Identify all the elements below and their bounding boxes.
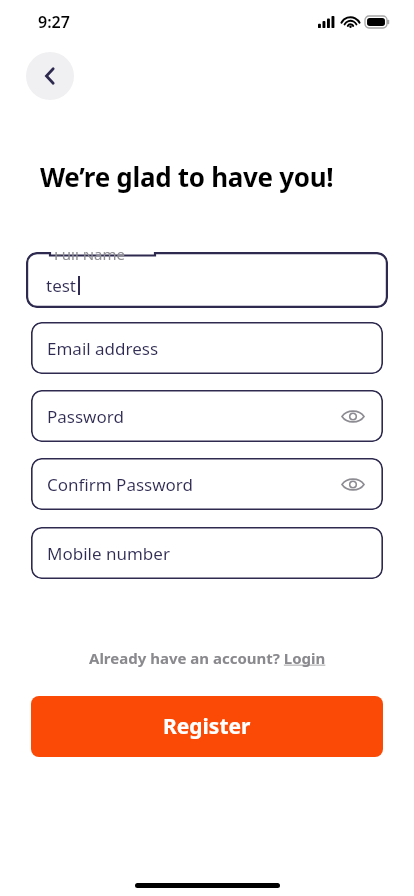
button[interactable]: Back [26, 52, 74, 100]
button[interactable]: Show password [337, 468, 369, 500]
staticText: Register [163, 712, 251, 741]
staticText: Password [47, 405, 124, 428]
button[interactable]: Register [31, 696, 383, 757]
button[interactable]: Email address [31, 322, 383, 374]
staticText: We’re glad to have you! [40, 159, 334, 194]
button[interactable]: Mobile number [31, 527, 383, 579]
staticText: Already have an account? Login [89, 648, 326, 668]
staticText: Email address [47, 337, 159, 360]
staticText: Full Name [54, 252, 125, 264]
staticText: test [46, 274, 77, 297]
button[interactable]: Show password [337, 400, 369, 432]
staticText: 9:27 [38, 11, 70, 33]
button[interactable]: Already have an account? Login [85, 646, 330, 670]
staticText: Mobile number [47, 542, 170, 565]
button[interactable]: Confirm Password [31, 458, 383, 510]
staticText: Confirm Password [47, 473, 193, 496]
button[interactable]: Password [31, 390, 383, 442]
button[interactable]: Full Name [26, 252, 388, 308]
